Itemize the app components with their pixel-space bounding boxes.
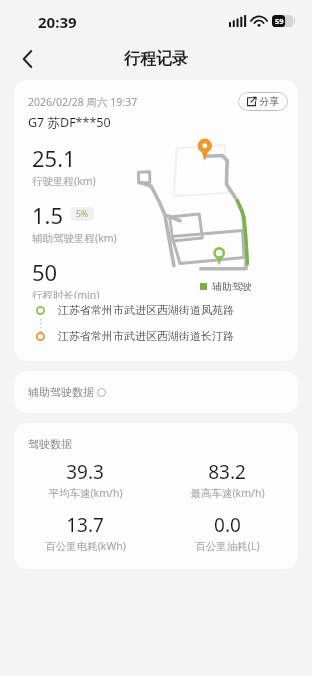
staticText: 行程时长(min) [32,288,100,299]
button[interactable]: 江苏省常州市武进区西湖街道凤苑路 [36,303,298,317]
staticText: 辅助驾驶数据 [28,385,94,399]
staticText: 83.2 [208,459,246,485]
staticText: 辅助驾驶里程(km) [32,231,117,245]
staticText: 1.5 [32,200,64,230]
staticText: 江苏省常州市武进区西湖街道长汀路 [58,329,234,343]
button[interactable]: Back [10,42,44,76]
button[interactable]: 江苏省常州市武进区西湖街道长汀路 [36,329,298,343]
staticText: 平均车速(km/h) [48,486,123,500]
staticText: 2026/02/28 周六 19:37 [28,95,138,109]
staticText: 行驶里程(km) [32,174,96,188]
staticText: G7 苏DF***50 [28,114,111,131]
staticText: 50 [32,257,58,287]
staticText: 20:39 [38,12,77,32]
staticText: 5% [76,208,89,220]
staticText: 39.3 [66,459,104,485]
staticText: 百公里油耗(L) [195,539,260,553]
staticText: 0.0 [214,512,241,538]
staticText: 25.1 [32,143,76,173]
staticText: 分享 [259,95,279,108]
button[interactable]: 辅助驾驶数据 [14,371,298,413]
staticText: 13.7 [66,512,104,538]
staticText: 驾驶数据 [28,437,72,451]
button[interactable]: 分享 [238,92,288,111]
staticText: 最高车速(km/h) [190,486,265,500]
staticText: 百公里电耗(kWh) [45,539,126,553]
staticText: 行程记录 [124,49,188,69]
staticText: 辅助驾驶 [212,280,252,293]
staticText: 59 [275,16,284,26]
staticText: 江苏省常州市武进区西湖街道凤苑路 [58,303,234,317]
